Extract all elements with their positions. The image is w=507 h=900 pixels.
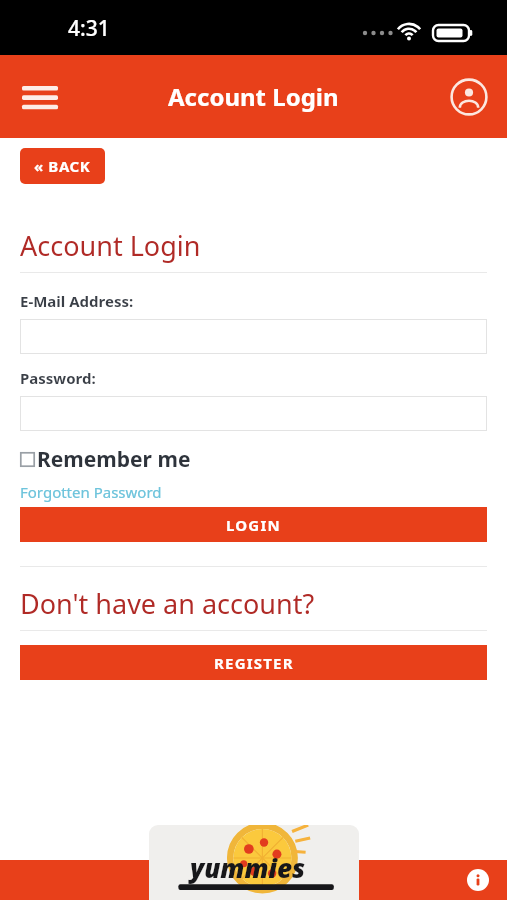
button[interactable] [20, 319, 487, 354]
button[interactable]: Yummies home [149, 825, 359, 900]
button[interactable]: LOGIN [20, 507, 487, 542]
staticText: REGISTER [214, 653, 294, 673]
button[interactable]: Forgotten Password [20, 482, 162, 502]
staticText: LOGIN [226, 515, 281, 535]
staticText: yummies [190, 850, 306, 885]
staticText: Account Login [168, 80, 339, 113]
staticText: Account Login [20, 227, 201, 264]
button[interactable]: REGISTER [20, 645, 487, 680]
button[interactable]: Remember me [20, 445, 191, 474]
button[interactable] [20, 396, 487, 431]
staticText: Remember me [37, 445, 191, 474]
button[interactable]: Account [443, 71, 495, 123]
staticText: Password: [20, 368, 96, 388]
button[interactable]: Open navigation menu [14, 71, 66, 123]
staticText: E-Mail Address: [20, 291, 134, 311]
staticText: Forgotten Password [20, 482, 162, 502]
button[interactable]: « BACK [20, 148, 105, 184]
staticText: « BACK [34, 156, 91, 176]
button[interactable]: Information [463, 865, 493, 895]
staticText: Don't have an account? [20, 585, 315, 622]
staticText: 4:31 [68, 14, 110, 43]
